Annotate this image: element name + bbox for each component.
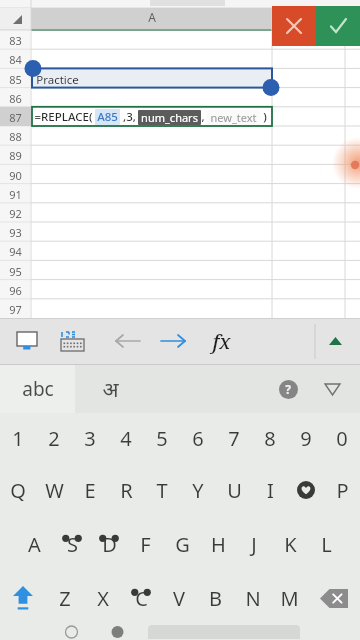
button[interactable]: Hide keyboard [310, 367, 354, 411]
button[interactable]: Emoji [60, 625, 82, 639]
staticText: 96 [9, 283, 22, 298]
staticText: fx [212, 328, 231, 355]
staticText: F [140, 531, 151, 558]
staticText: 9 [300, 425, 312, 452]
staticText: =REPLACE( [34, 109, 93, 125]
button[interactable]: X [84, 571, 122, 625]
button[interactable]: D [90, 517, 127, 571]
button[interactable]: Expand formula bar [323, 331, 347, 351]
button[interactable]: J [236, 517, 272, 571]
staticText: Z [59, 585, 71, 612]
staticText: B [209, 585, 222, 612]
staticText: S [67, 531, 78, 558]
staticText: H [211, 531, 226, 558]
staticText: A [28, 531, 41, 558]
staticText: 0 [336, 425, 348, 452]
staticText: I [267, 477, 274, 504]
staticText: U [227, 477, 242, 504]
staticText: 7 [228, 425, 240, 452]
button[interactable]: H [200, 517, 236, 571]
button[interactable]: 5 [144, 413, 180, 463]
button[interactable]: U [216, 463, 252, 517]
staticText: 84 [9, 52, 22, 67]
button[interactable]: 3 [72, 413, 108, 463]
staticText: 86 [9, 91, 22, 106]
staticText: T [156, 477, 168, 504]
button[interactable]: abc [0, 365, 75, 413]
button[interactable]: Previous [110, 326, 146, 356]
staticText: J [251, 531, 257, 558]
button[interactable]: 2 [36, 413, 72, 463]
button[interactable]: 0 [324, 413, 360, 463]
button[interactable] [288, 463, 324, 517]
button[interactable]: View [12, 327, 44, 355]
staticText: G [175, 531, 190, 558]
button[interactable]: P [324, 463, 360, 517]
button[interactable]: R [108, 463, 144, 517]
button[interactable]: C [122, 571, 160, 625]
button[interactable]: 4 [108, 413, 144, 463]
staticText: ? [285, 381, 291, 397]
button[interactable]: Next [155, 326, 191, 356]
staticText: 83 [9, 33, 22, 48]
button[interactable]: L [308, 517, 344, 571]
button[interactable]: Y [180, 463, 216, 517]
button[interactable]: 9 [288, 413, 324, 463]
staticText: abc [22, 376, 54, 402]
staticText: ) [260, 109, 267, 125]
staticText: 89 [9, 148, 22, 163]
button[interactable]: अ [75, 365, 145, 413]
button[interactable]: E [72, 463, 108, 517]
staticText: 93 [9, 225, 22, 240]
staticText: Q [10, 477, 26, 504]
staticText: A85 [97, 109, 118, 125]
button[interactable]: 6 [180, 413, 216, 463]
button[interactable]: Cancel [272, 6, 316, 46]
staticText: E [84, 477, 96, 504]
staticText: 8 [264, 425, 276, 452]
staticText: Practice [36, 72, 79, 88]
button[interactable]: M [271, 571, 308, 625]
button[interactable]: S [53, 517, 90, 571]
button[interactable]: Accept [316, 6, 360, 46]
staticText: 3 [84, 425, 96, 452]
staticText: Y [192, 477, 204, 504]
staticText: अ [102, 375, 119, 404]
staticText: A [148, 9, 156, 25]
button[interactable]: A [16, 517, 53, 571]
staticText: M [280, 585, 299, 612]
staticText: 6 [192, 425, 204, 452]
button[interactable]: 1 [0, 413, 36, 463]
staticText: new_text [210, 110, 257, 125]
button[interactable]: B [197, 571, 234, 625]
staticText: X [97, 585, 109, 612]
button[interactable]: W [36, 463, 72, 517]
staticText: 97 [9, 302, 22, 317]
button[interactable]: G [164, 517, 200, 571]
button[interactable]: N [234, 571, 271, 625]
staticText: L [321, 531, 332, 558]
button[interactable]: T [144, 463, 180, 517]
button[interactable]: K [272, 517, 308, 571]
staticText: 1 [12, 425, 24, 452]
staticText: 90 [9, 168, 22, 183]
staticText: N [245, 585, 261, 612]
button[interactable]: Shift [0, 571, 46, 625]
staticText: K [284, 531, 297, 558]
button[interactable]: 8 [252, 413, 288, 463]
button[interactable]: Z [46, 571, 84, 625]
button[interactable]: Function [200, 324, 242, 358]
button[interactable]: Backspace [308, 571, 360, 625]
staticText: P [336, 477, 349, 504]
button[interactable]: Help [266, 367, 310, 411]
button[interactable]: V [160, 571, 197, 625]
button[interactable]: Numeric keypad [57, 327, 89, 355]
button[interactable]: 7 [216, 413, 252, 463]
button[interactable]: Settings [104, 625, 130, 639]
button[interactable]: I [252, 463, 288, 517]
button[interactable]: F [127, 517, 164, 571]
button[interactable]: Q [0, 463, 36, 517]
staticText: C [135, 585, 148, 612]
